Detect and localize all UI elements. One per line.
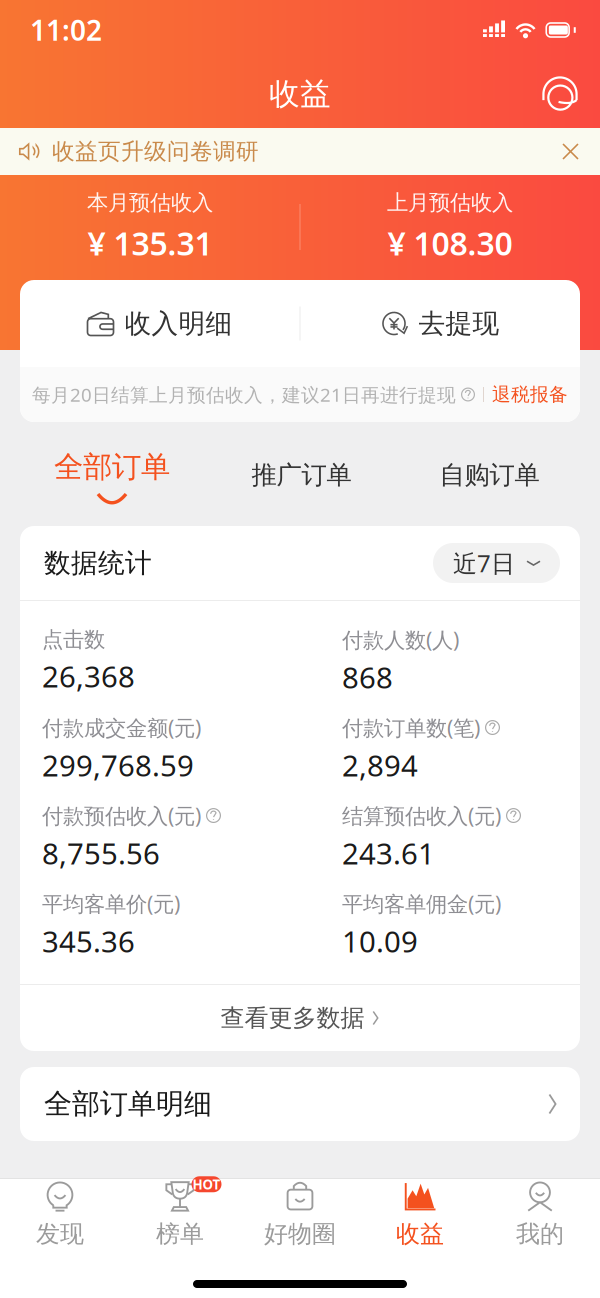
button[interactable]: 近7日 bbox=[433, 543, 560, 583]
staticText: 结算预估收入(元) bbox=[342, 801, 501, 830]
button[interactable]: 我的 bbox=[480, 1179, 600, 1251]
staticText: 查看更多数据 bbox=[220, 1003, 364, 1033]
button[interactable]: 自购订单 bbox=[379, 424, 600, 526]
button[interactable]: 全部订单明细 bbox=[0, 1051, 600, 1141]
staticText: 自购订单 bbox=[439, 459, 539, 490]
button[interactable]: 查看更多数据 bbox=[20, 985, 580, 1051]
staticText: 本月预估收入 bbox=[87, 190, 213, 216]
staticText: 10.09 bbox=[342, 922, 418, 961]
staticText: 推广订单 bbox=[251, 459, 351, 490]
button[interactable]: HOT bbox=[120, 1179, 240, 1251]
staticText: 退税报备 bbox=[492, 383, 568, 406]
button[interactable]: 去提现 bbox=[300, 280, 580, 367]
staticText: 去提现 bbox=[418, 307, 499, 340]
staticText: 数据统计 bbox=[44, 547, 152, 579]
button[interactable]: 全部订单 bbox=[0, 424, 224, 526]
staticText: 收益 bbox=[396, 1219, 444, 1249]
staticText: 299,768.59 bbox=[42, 746, 194, 785]
staticText: 发现 bbox=[36, 1219, 84, 1249]
staticText: 平均客单价(元) bbox=[42, 889, 180, 918]
button[interactable]: 退税报备 bbox=[492, 383, 568, 406]
staticText: 点击数 bbox=[42, 626, 105, 653]
button[interactable]: 推广订单 bbox=[224, 424, 379, 526]
staticText: 收益 bbox=[269, 75, 331, 113]
staticText: ¥ 135.31 bbox=[87, 222, 212, 264]
staticText: 榜单 bbox=[156, 1219, 204, 1249]
staticText: 868 bbox=[342, 658, 393, 697]
staticText: 全部订单明细 bbox=[44, 1087, 212, 1121]
staticText: 11:02 bbox=[30, 11, 102, 49]
staticText: 付款预估收入(元) bbox=[42, 801, 201, 830]
button[interactable]: 收入明细 bbox=[20, 280, 300, 367]
staticText: 26,368 bbox=[42, 657, 135, 696]
staticText: 上月预估收入 bbox=[387, 190, 513, 216]
staticText: 付款人数(人) bbox=[342, 625, 459, 654]
staticText: 收入明细 bbox=[124, 307, 232, 340]
staticText: 每月20日结算上月预估收入，建议21日再进行提现 bbox=[32, 382, 456, 407]
staticText: 近7日 bbox=[453, 547, 515, 579]
staticText: 2,894 bbox=[342, 746, 418, 785]
staticText: 345.36 bbox=[42, 922, 135, 961]
staticText: 好物圈 bbox=[264, 1219, 336, 1249]
staticText: 收益页升级问卷调研 bbox=[52, 138, 259, 165]
staticText: 8,755.56 bbox=[42, 834, 160, 873]
staticText: HOT bbox=[192, 1175, 220, 1193]
button[interactable]: 客服 bbox=[542, 76, 600, 112]
button[interactable]: 发现 bbox=[0, 1179, 120, 1251]
staticText: 付款订单数(笔) bbox=[342, 713, 480, 742]
staticText: ¥ 108.30 bbox=[387, 222, 512, 264]
staticText: 我的 bbox=[516, 1219, 564, 1249]
staticText: 243.61 bbox=[342, 834, 435, 873]
button[interactable]: 好物圈 bbox=[240, 1179, 360, 1251]
button[interactable]: 收益 bbox=[360, 1179, 480, 1251]
staticText: 平均客单佣金(元) bbox=[342, 889, 501, 918]
button[interactable]: 收益页升级问卷调研 bbox=[0, 128, 600, 175]
staticText: 全部订单 bbox=[54, 449, 170, 485]
staticText: 付款成交金额(元) bbox=[42, 713, 201, 742]
